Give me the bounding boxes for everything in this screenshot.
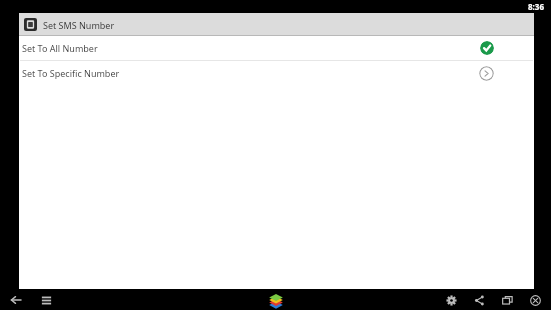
- staticText: Set To Specific Number: [22, 67, 479, 79]
- button[interactable]: Windowed mode: [499, 292, 515, 308]
- button[interactable]: Share: [471, 292, 487, 308]
- button[interactable]: Set To Specific Number: [479, 66, 494, 81]
- button[interactable]: Set To Specific Number: [19, 61, 534, 85]
- staticText: Set To All Number: [22, 42, 480, 54]
- staticText: Set SMS Number: [43, 19, 115, 31]
- button[interactable]: Set To All Number: [19, 36, 534, 60]
- button[interactable]: Selected: [480, 41, 494, 55]
- staticText: 8:36: [528, 1, 544, 12]
- button[interactable]: BlueStacks home: [267, 291, 285, 309]
- button[interactable]: Recent apps: [38, 292, 54, 308]
- button[interactable]: Settings: [443, 292, 459, 308]
- button[interactable]: Close: [527, 292, 543, 308]
- button[interactable]: Back: [8, 292, 24, 308]
